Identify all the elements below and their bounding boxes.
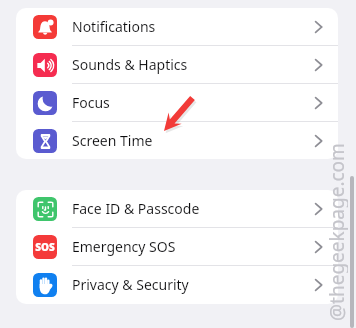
button[interactable]: SOS: [16, 228, 338, 265]
button[interactable]: Face ID & Passcode: [16, 190, 338, 227]
button[interactable]: Screen Time: [16, 122, 338, 159]
staticText: Emergency SOS: [72, 237, 176, 256]
staticText: Sounds & Haptics: [72, 55, 188, 74]
staticText: SOS: [35, 240, 55, 254]
staticText: @thegeekpage.com: [324, 143, 348, 321]
staticText: Focus: [72, 93, 110, 112]
button[interactable]: Privacy & Security: [16, 266, 338, 303]
button[interactable]: Focus: [16, 84, 338, 121]
button[interactable]: Sounds & Haptics: [16, 46, 338, 83]
staticText: Notifications: [72, 17, 156, 36]
staticText: Face ID & Passcode: [72, 199, 200, 218]
button[interactable]: Notifications: [16, 8, 338, 45]
staticText: Screen Time: [72, 131, 153, 150]
staticText: Privacy & Security: [72, 275, 189, 294]
